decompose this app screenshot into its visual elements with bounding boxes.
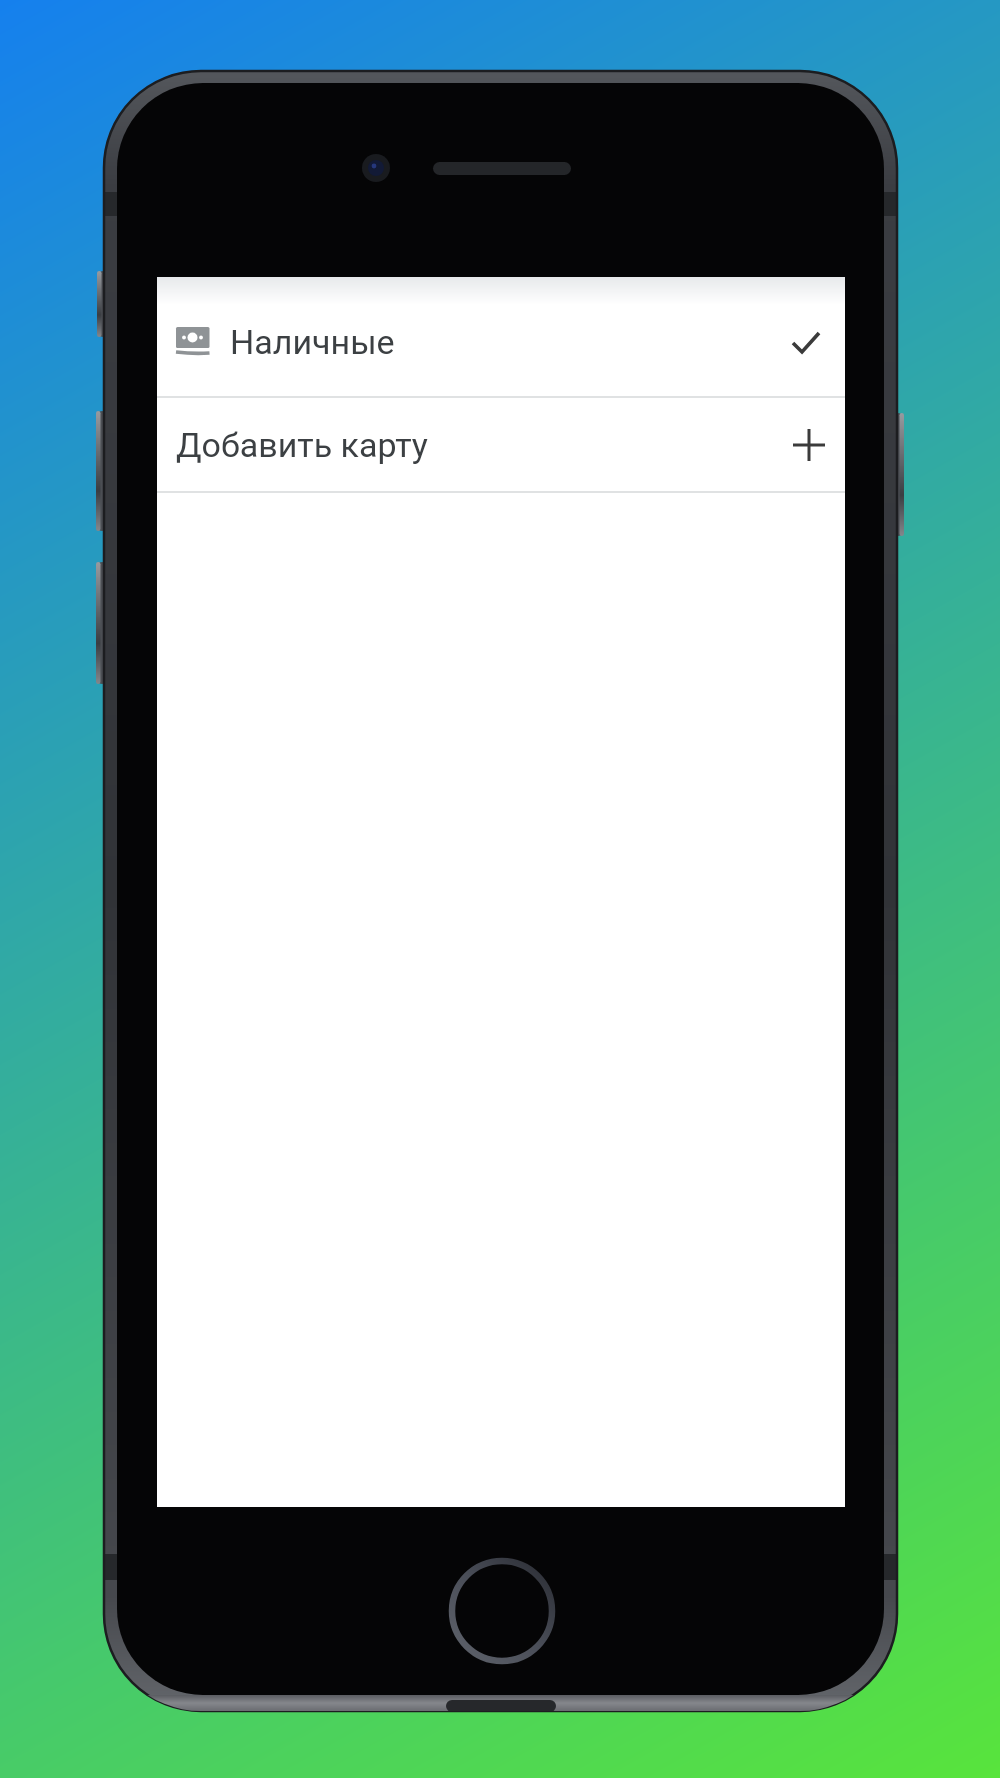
staticText: Наличные xyxy=(230,322,395,362)
staticText: Добавить карту xyxy=(176,425,428,465)
button[interactable]: Наличные xyxy=(157,277,845,396)
button[interactable]: Добавить карту xyxy=(157,398,845,491)
